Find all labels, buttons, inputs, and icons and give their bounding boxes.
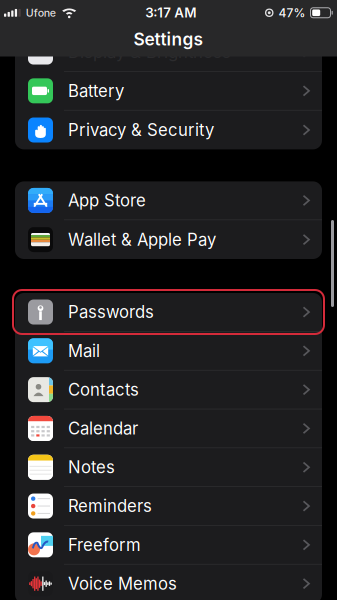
- staticText: Calendar: [68, 418, 138, 439]
- staticText: Mail: [68, 341, 100, 361]
- button[interactable]: Wallet & Apple Pay: [15, 220, 322, 259]
- staticText: App Store: [68, 190, 146, 211]
- button[interactable]: Passwords: [15, 293, 322, 332]
- button[interactable]: App Store: [15, 181, 322, 220]
- staticText: Ufone: [26, 6, 56, 19]
- button[interactable]: Notes: [15, 448, 322, 487]
- button[interactable]: Voice Memos: [15, 565, 322, 600]
- button[interactable]: Reminders: [15, 487, 322, 526]
- staticText: Contacts: [68, 380, 139, 400]
- staticText: Voice Memos: [68, 574, 177, 594]
- button[interactable]: Privacy & Security: [15, 111, 322, 149]
- staticText: Wallet & Apple Pay: [68, 229, 216, 250]
- button[interactable]: Contacts: [15, 371, 322, 409]
- staticText: Settings: [133, 29, 203, 50]
- staticText: 47%: [278, 5, 305, 20]
- staticText: Display & Brightness: [68, 42, 231, 62]
- button[interactable]: Mail: [15, 332, 322, 371]
- staticText: Battery: [68, 81, 124, 101]
- button[interactable]: Display & Brightness: [15, 33, 322, 72]
- staticText: Passwords: [68, 302, 154, 322]
- button[interactable]: Battery: [15, 72, 322, 111]
- staticText: 3:17 AM: [145, 5, 196, 21]
- staticText: Freeform: [68, 535, 141, 555]
- staticText: Privacy & Security: [68, 120, 214, 140]
- button[interactable]: Calendar: [15, 409, 322, 448]
- staticText: Reminders: [68, 496, 152, 516]
- button[interactable]: Freeform: [15, 526, 322, 565]
- staticText: Notes: [68, 457, 115, 477]
